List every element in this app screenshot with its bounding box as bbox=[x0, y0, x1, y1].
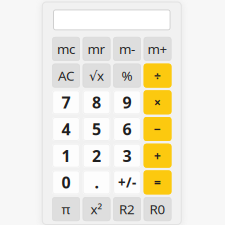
button[interactable]: π bbox=[52, 197, 80, 221]
button[interactable]: 5 bbox=[83, 117, 110, 141]
staticText: − bbox=[154, 121, 161, 137]
staticText: + bbox=[154, 147, 161, 164]
button[interactable]: mr bbox=[83, 37, 110, 61]
staticText: AC bbox=[58, 66, 74, 85]
button[interactable]: − bbox=[144, 117, 171, 141]
button[interactable]: × bbox=[144, 90, 171, 114]
staticText: 2 bbox=[92, 145, 101, 167]
button[interactable]: 2 bbox=[83, 144, 110, 168]
staticText: 8 bbox=[92, 91, 101, 113]
button[interactable]: 6 bbox=[113, 117, 141, 141]
staticText: R0 bbox=[149, 200, 165, 218]
button[interactable]: 8 bbox=[83, 90, 110, 114]
button[interactable]: 1 bbox=[52, 144, 80, 168]
button[interactable]: + bbox=[144, 144, 171, 168]
staticText: ÷ bbox=[154, 67, 161, 84]
staticText: R2 bbox=[119, 200, 135, 218]
button[interactable]: 3 bbox=[113, 144, 141, 168]
staticText: m- bbox=[119, 40, 135, 58]
button[interactable]: mc bbox=[52, 37, 80, 61]
button[interactable]: = bbox=[144, 170, 171, 194]
button[interactable]: R2 bbox=[113, 197, 141, 221]
staticText: 7 bbox=[61, 91, 70, 113]
staticText: % bbox=[121, 66, 132, 85]
staticText: √x bbox=[89, 66, 104, 85]
staticText: +/- bbox=[118, 173, 136, 191]
button[interactable]: 7 bbox=[52, 90, 80, 114]
button[interactable]: m+ bbox=[144, 37, 171, 61]
staticText: m+ bbox=[147, 40, 167, 58]
staticText: x² bbox=[90, 200, 102, 218]
staticText: × bbox=[154, 94, 161, 110]
button[interactable]: ÷ bbox=[144, 64, 171, 88]
button[interactable]: R0 bbox=[144, 197, 171, 221]
staticText: 1 bbox=[61, 145, 70, 167]
button[interactable]: % bbox=[113, 64, 141, 88]
button[interactable]: x² bbox=[83, 197, 110, 221]
button[interactable]: m- bbox=[113, 37, 141, 61]
staticText: π bbox=[61, 200, 70, 218]
staticText: . bbox=[94, 171, 98, 193]
button[interactable]: 9 bbox=[113, 90, 141, 114]
staticText: 4 bbox=[61, 118, 70, 140]
button[interactable]: 4 bbox=[52, 117, 80, 141]
staticText: mc bbox=[57, 40, 75, 58]
staticText: 9 bbox=[122, 91, 131, 113]
staticText: = bbox=[154, 174, 161, 190]
button[interactable]: √x bbox=[83, 64, 110, 88]
staticText: 5 bbox=[92, 118, 101, 140]
button[interactable]: +/- bbox=[113, 170, 141, 194]
staticText: 0 bbox=[61, 171, 70, 193]
staticText: 3 bbox=[122, 145, 131, 167]
button[interactable]: 0 bbox=[52, 170, 80, 194]
staticText: mr bbox=[87, 40, 105, 58]
button[interactable]: AC bbox=[52, 64, 80, 88]
staticText: 6 bbox=[122, 118, 131, 140]
button[interactable]: . bbox=[83, 170, 110, 194]
